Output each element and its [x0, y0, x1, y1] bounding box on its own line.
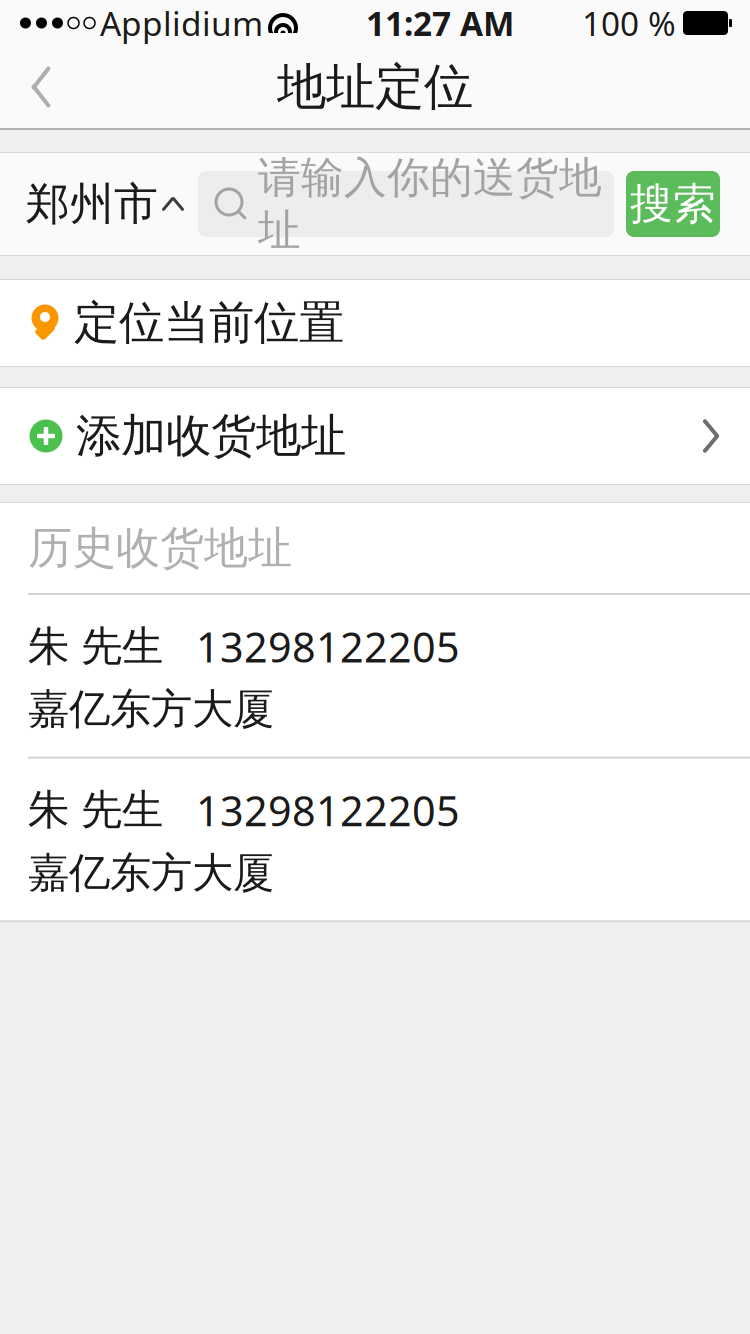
- staticText: 朱 先生: [28, 785, 163, 835]
- button[interactable]: 郑州市: [0, 154, 198, 254]
- staticText: 郑州市: [26, 177, 158, 231]
- staticText: 定位当前位置: [74, 295, 344, 351]
- staticText: 13298122205: [196, 783, 460, 838]
- button[interactable]: 添加收货地址: [0, 388, 750, 484]
- staticText: 请输入你的送货地址: [258, 152, 602, 256]
- staticText: 搜索: [630, 178, 716, 230]
- button[interactable]: 请输入你的送货地址: [198, 171, 614, 237]
- button[interactable]: 定位当前位置: [0, 280, 750, 366]
- staticText: 嘉亿东方大厦: [28, 684, 274, 735]
- staticText: 地址定位: [277, 57, 473, 117]
- button[interactable]: 搜索: [626, 171, 720, 237]
- button[interactable]: 朱 先生: [0, 757, 750, 920]
- staticText: 朱 先生: [28, 621, 163, 672]
- staticText: Applidium: [100, 1, 263, 45]
- staticText: 11:27 AM: [366, 1, 514, 45]
- button[interactable]: 朱 先生: [0, 593, 750, 757]
- staticText: 13298122205: [196, 619, 460, 674]
- staticText: 嘉亿东方大厦: [28, 847, 274, 898]
- staticText: 历史收货地址: [28, 521, 292, 575]
- button[interactable]: Back: [0, 46, 80, 128]
- staticText: 100 %: [582, 1, 676, 45]
- staticText: 添加收货地址: [76, 408, 346, 464]
